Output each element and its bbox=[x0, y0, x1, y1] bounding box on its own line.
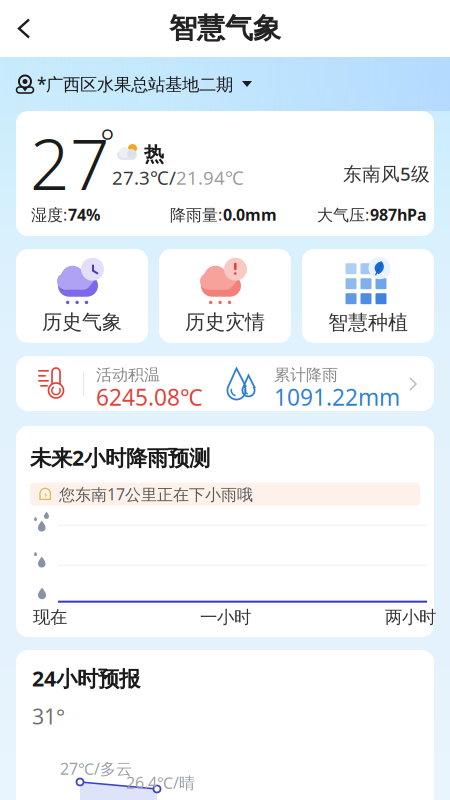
button[interactable]: 智慧种植 bbox=[302, 249, 434, 343]
staticText: 大气压: bbox=[317, 204, 369, 225]
button[interactable]: 选择基地 bbox=[0, 62, 252, 105]
button[interactable]: 历史灾情 bbox=[159, 249, 291, 343]
staticText: 累计降雨 bbox=[274, 365, 338, 385]
staticText: 一小时 bbox=[200, 607, 251, 628]
staticText: 历史灾情 bbox=[185, 310, 265, 334]
button[interactable]: 活动积温 bbox=[16, 356, 434, 411]
staticText: 24小时预报 bbox=[32, 664, 140, 692]
staticText: 活动积温 bbox=[96, 365, 160, 385]
staticText: 21.94℃ bbox=[176, 165, 244, 190]
staticText: ° bbox=[100, 118, 115, 164]
staticText: 27.3℃/ bbox=[112, 165, 176, 190]
button[interactable]: 返回 bbox=[0, 2, 48, 54]
staticText: 热 bbox=[144, 142, 164, 167]
staticText: 987hPa bbox=[370, 204, 427, 225]
staticText: 未来2小时降雨预测 bbox=[30, 443, 210, 472]
staticText: 0.0mm bbox=[223, 204, 277, 225]
staticText: 74% bbox=[68, 204, 100, 225]
staticText: *广西区水果总站基地二期 bbox=[37, 72, 233, 95]
staticText: 两小时 bbox=[385, 607, 436, 628]
staticText: 现在 bbox=[33, 607, 67, 628]
staticText: 历史气象 bbox=[42, 310, 122, 334]
staticText: 东南风5级 bbox=[343, 161, 430, 186]
staticText: 6245.08℃ bbox=[96, 382, 203, 412]
staticText: 27℃/多云 bbox=[60, 758, 132, 779]
staticText: 1091.22mm bbox=[274, 382, 400, 412]
staticText: 31° bbox=[32, 702, 65, 730]
staticText: 27 bbox=[30, 117, 110, 209]
staticText: 智慧气象 bbox=[169, 11, 281, 46]
staticText: 智慧种植 bbox=[328, 310, 408, 335]
staticText: 降雨量: bbox=[170, 204, 222, 225]
staticText: 26.4℃/晴 bbox=[126, 772, 195, 793]
staticText: 湿度: bbox=[31, 204, 67, 225]
button[interactable]: 历史气象 bbox=[16, 249, 148, 343]
staticText: 您东南17公里正在下小雨哦 bbox=[59, 483, 253, 505]
